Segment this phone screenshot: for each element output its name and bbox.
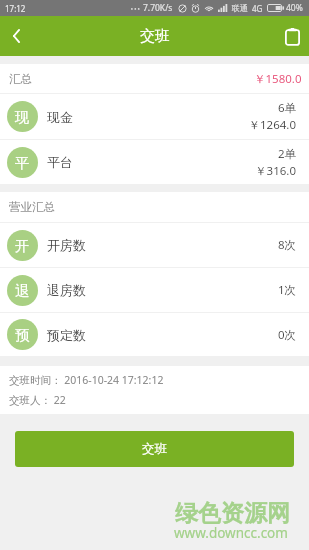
staticText: 4G xyxy=(252,3,263,14)
staticText: 平台 xyxy=(47,154,73,170)
staticText: 交班人： 22 xyxy=(9,393,66,407)
staticText: 交班 xyxy=(142,441,167,457)
staticText: 6单 xyxy=(277,100,296,116)
staticText: 现 xyxy=(15,108,30,126)
button[interactable]: 退 xyxy=(0,268,309,312)
staticText: 预 xyxy=(15,326,30,344)
staticText: 平 xyxy=(15,154,30,172)
staticText: 40% xyxy=(286,2,303,14)
staticText: 17:12 xyxy=(5,3,26,14)
staticText: ￥1580.0 xyxy=(254,71,302,87)
staticText: 交班 xyxy=(140,27,170,46)
staticText: 营业汇总 xyxy=(9,200,55,214)
staticText: 1次 xyxy=(277,282,296,298)
staticText: 绿色资源网 xyxy=(175,499,290,528)
staticText: 8次 xyxy=(277,237,296,253)
staticText: 汇总 xyxy=(9,72,32,86)
staticText: www.downcc.com xyxy=(174,524,288,542)
staticText: 退房数 xyxy=(47,282,86,298)
staticText: 预定数 xyxy=(47,327,86,343)
staticText: 0次 xyxy=(277,327,296,343)
button[interactable]: 交班 xyxy=(15,431,294,467)
button[interactable]: 平 xyxy=(0,140,309,184)
staticText: 交班时间： 2016-10-24 17:12:12 xyxy=(9,373,164,387)
staticText: 现金 xyxy=(47,109,73,125)
staticText: ￥316.0 xyxy=(255,163,296,179)
staticText: 联通 xyxy=(232,3,248,13)
staticText: 2单 xyxy=(277,146,296,162)
button[interactable]: 现 xyxy=(0,94,309,139)
staticText: 开房数 xyxy=(47,237,86,253)
button[interactable]: 预 xyxy=(0,313,309,356)
staticText: 7.70K/s xyxy=(143,2,173,14)
button[interactable]: 开 xyxy=(0,223,309,267)
staticText: 退 xyxy=(15,282,30,300)
button[interactable]: Records xyxy=(275,16,309,56)
staticText: 开 xyxy=(15,237,30,255)
button[interactable]: Back xyxy=(0,16,32,56)
staticText: ￥1264.0 xyxy=(248,117,296,133)
